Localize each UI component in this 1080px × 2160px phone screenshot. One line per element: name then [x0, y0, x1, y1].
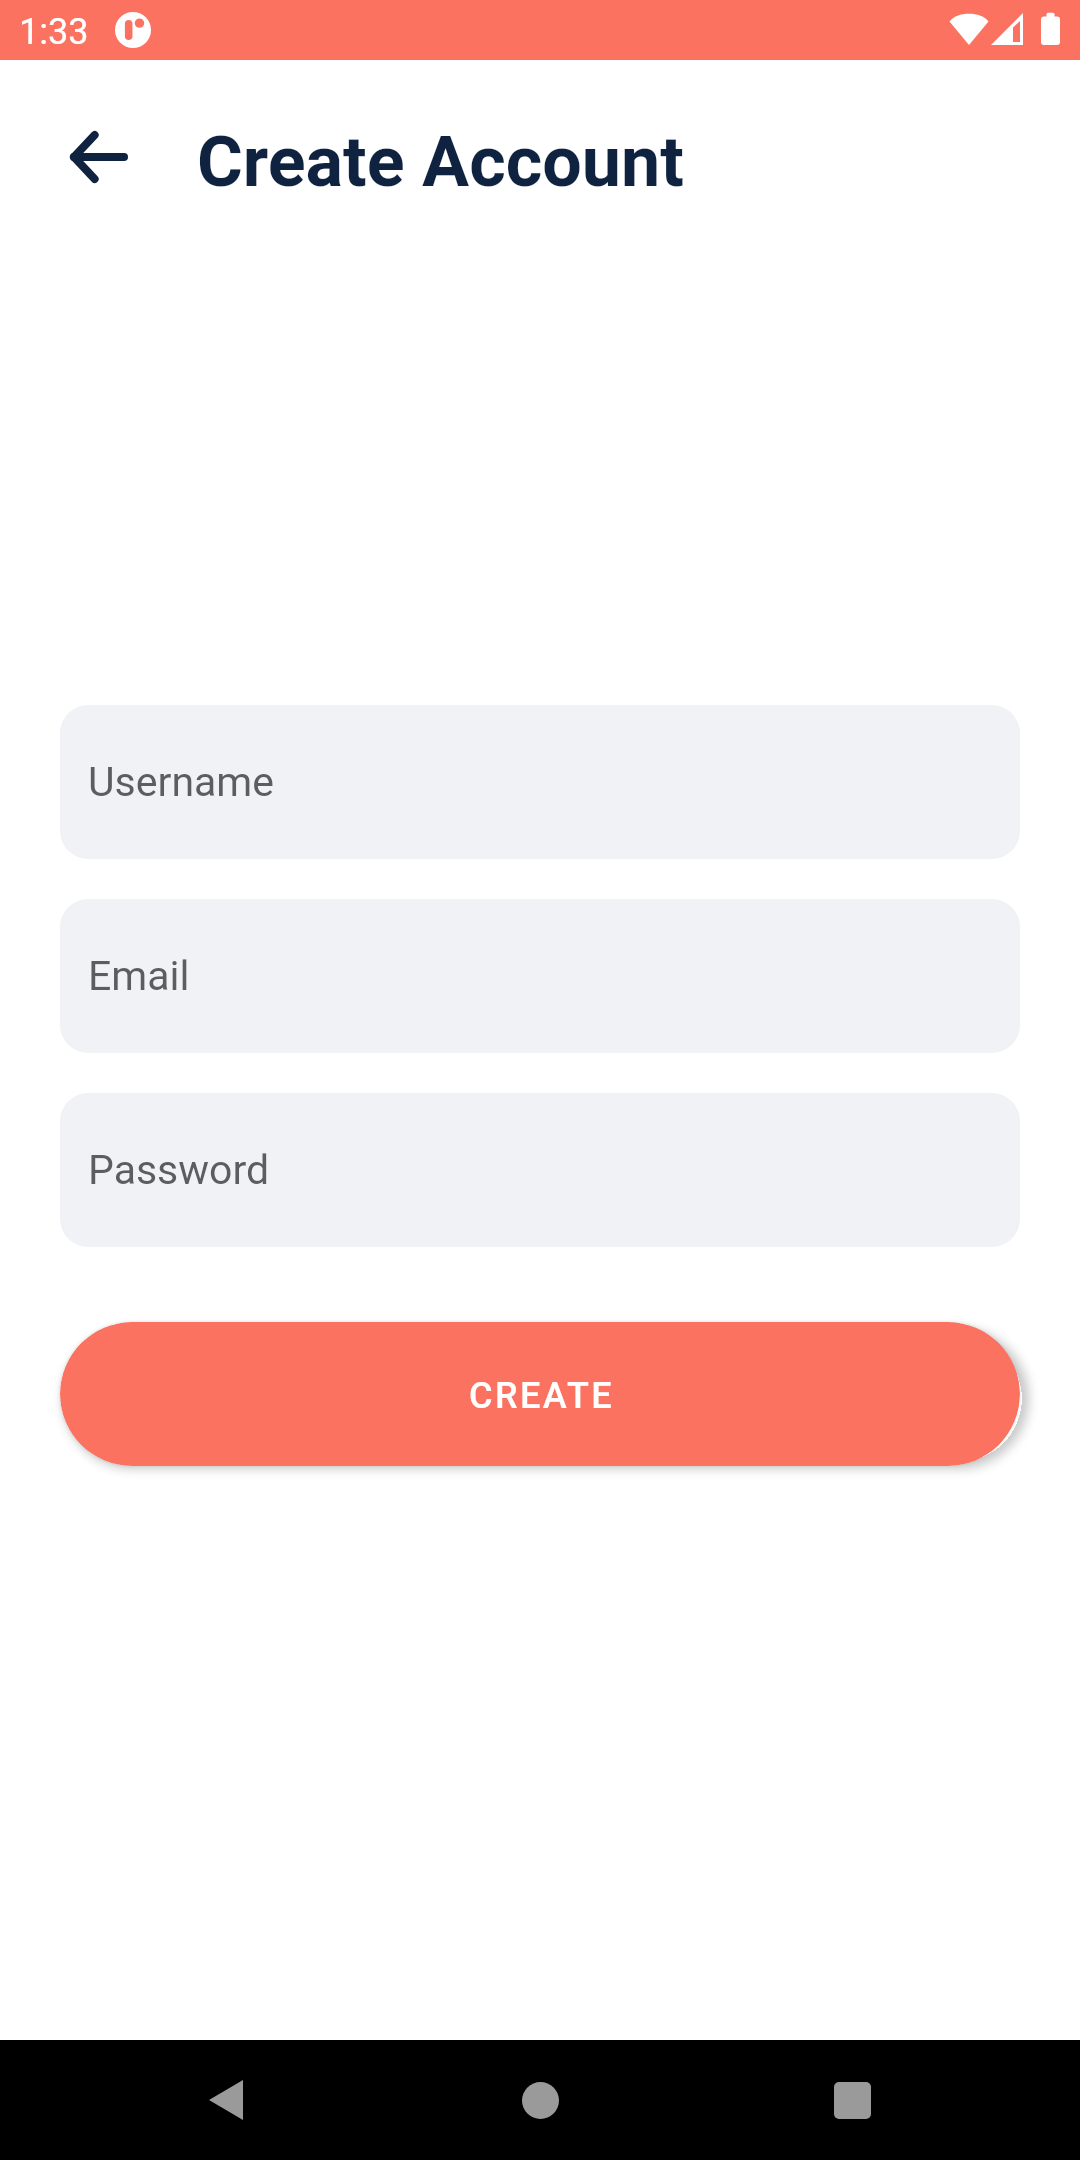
staticText: Email: [88, 952, 190, 1000]
staticText: CREATE: [469, 1375, 614, 1417]
staticText: Create Account: [197, 121, 684, 203]
button[interactable]: Back: [166, 2040, 286, 2160]
button[interactable]: Password: [60, 1093, 1020, 1247]
button[interactable]: Email: [60, 899, 1020, 1053]
staticText: Username: [88, 758, 275, 806]
button[interactable]: Username: [60, 705, 1020, 859]
staticText: Password: [88, 1146, 270, 1194]
button[interactable]: Home: [480, 2040, 600, 2160]
button[interactable]: CREATE: [60, 1322, 1020, 1466]
staticText: 1:33: [19, 11, 89, 53]
button[interactable]: Back: [61, 120, 135, 194]
button[interactable]: Recents: [792, 2040, 912, 2160]
